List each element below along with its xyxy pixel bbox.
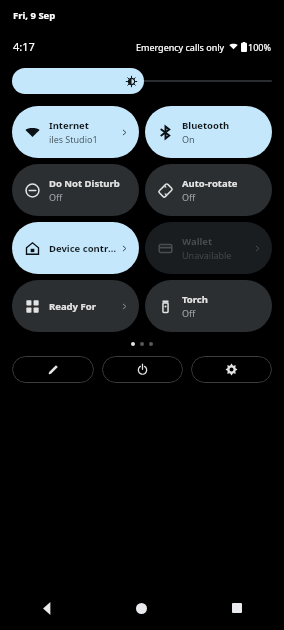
staticText: On: [182, 133, 195, 145]
button[interactable]: Auto-rotate: [145, 164, 272, 216]
button[interactable]: Home: [94, 586, 189, 630]
staticText: Fri, 9 Sep: [13, 9, 56, 22]
staticText: Unavailable: [182, 249, 232, 261]
button[interactable]: Internet: [12, 106, 139, 158]
button[interactable]: Device controls: [12, 222, 139, 274]
staticText: Device controls: [49, 242, 118, 255]
staticText: 4:17: [13, 39, 35, 54]
button[interactable]: Settings: [191, 356, 272, 383]
button[interactable]: Recent apps: [189, 586, 284, 630]
button[interactable]: Edit tiles: [12, 356, 94, 383]
button[interactable]: Brightness: [12, 67, 272, 95]
staticText: Emergency calls only: [136, 41, 225, 53]
button[interactable]: Bluetooth: [145, 106, 272, 158]
button[interactable]: Ready For: [12, 280, 139, 332]
button[interactable]: Torch: [145, 280, 272, 332]
staticText: Off: [182, 307, 196, 319]
button[interactable]: Do Not Disturb: [12, 164, 139, 216]
staticText: Wallet: [182, 235, 213, 248]
button[interactable]: Wallet: [145, 222, 272, 274]
staticText: Ready For: [49, 300, 96, 313]
staticText: Internet: [49, 119, 89, 132]
staticText: 100%: [248, 41, 271, 53]
button[interactable]: Back: [0, 586, 94, 630]
button[interactable]: Power: [102, 356, 183, 383]
staticText: Off: [182, 191, 196, 203]
staticText: Off: [49, 191, 63, 203]
staticText: Bluetooth: [182, 119, 230, 132]
staticText: Torch: [182, 293, 208, 306]
staticText: Auto-rotate: [182, 177, 238, 190]
staticText: Do Not Disturb: [49, 177, 120, 190]
staticText: iles Studio1: [49, 133, 98, 145]
